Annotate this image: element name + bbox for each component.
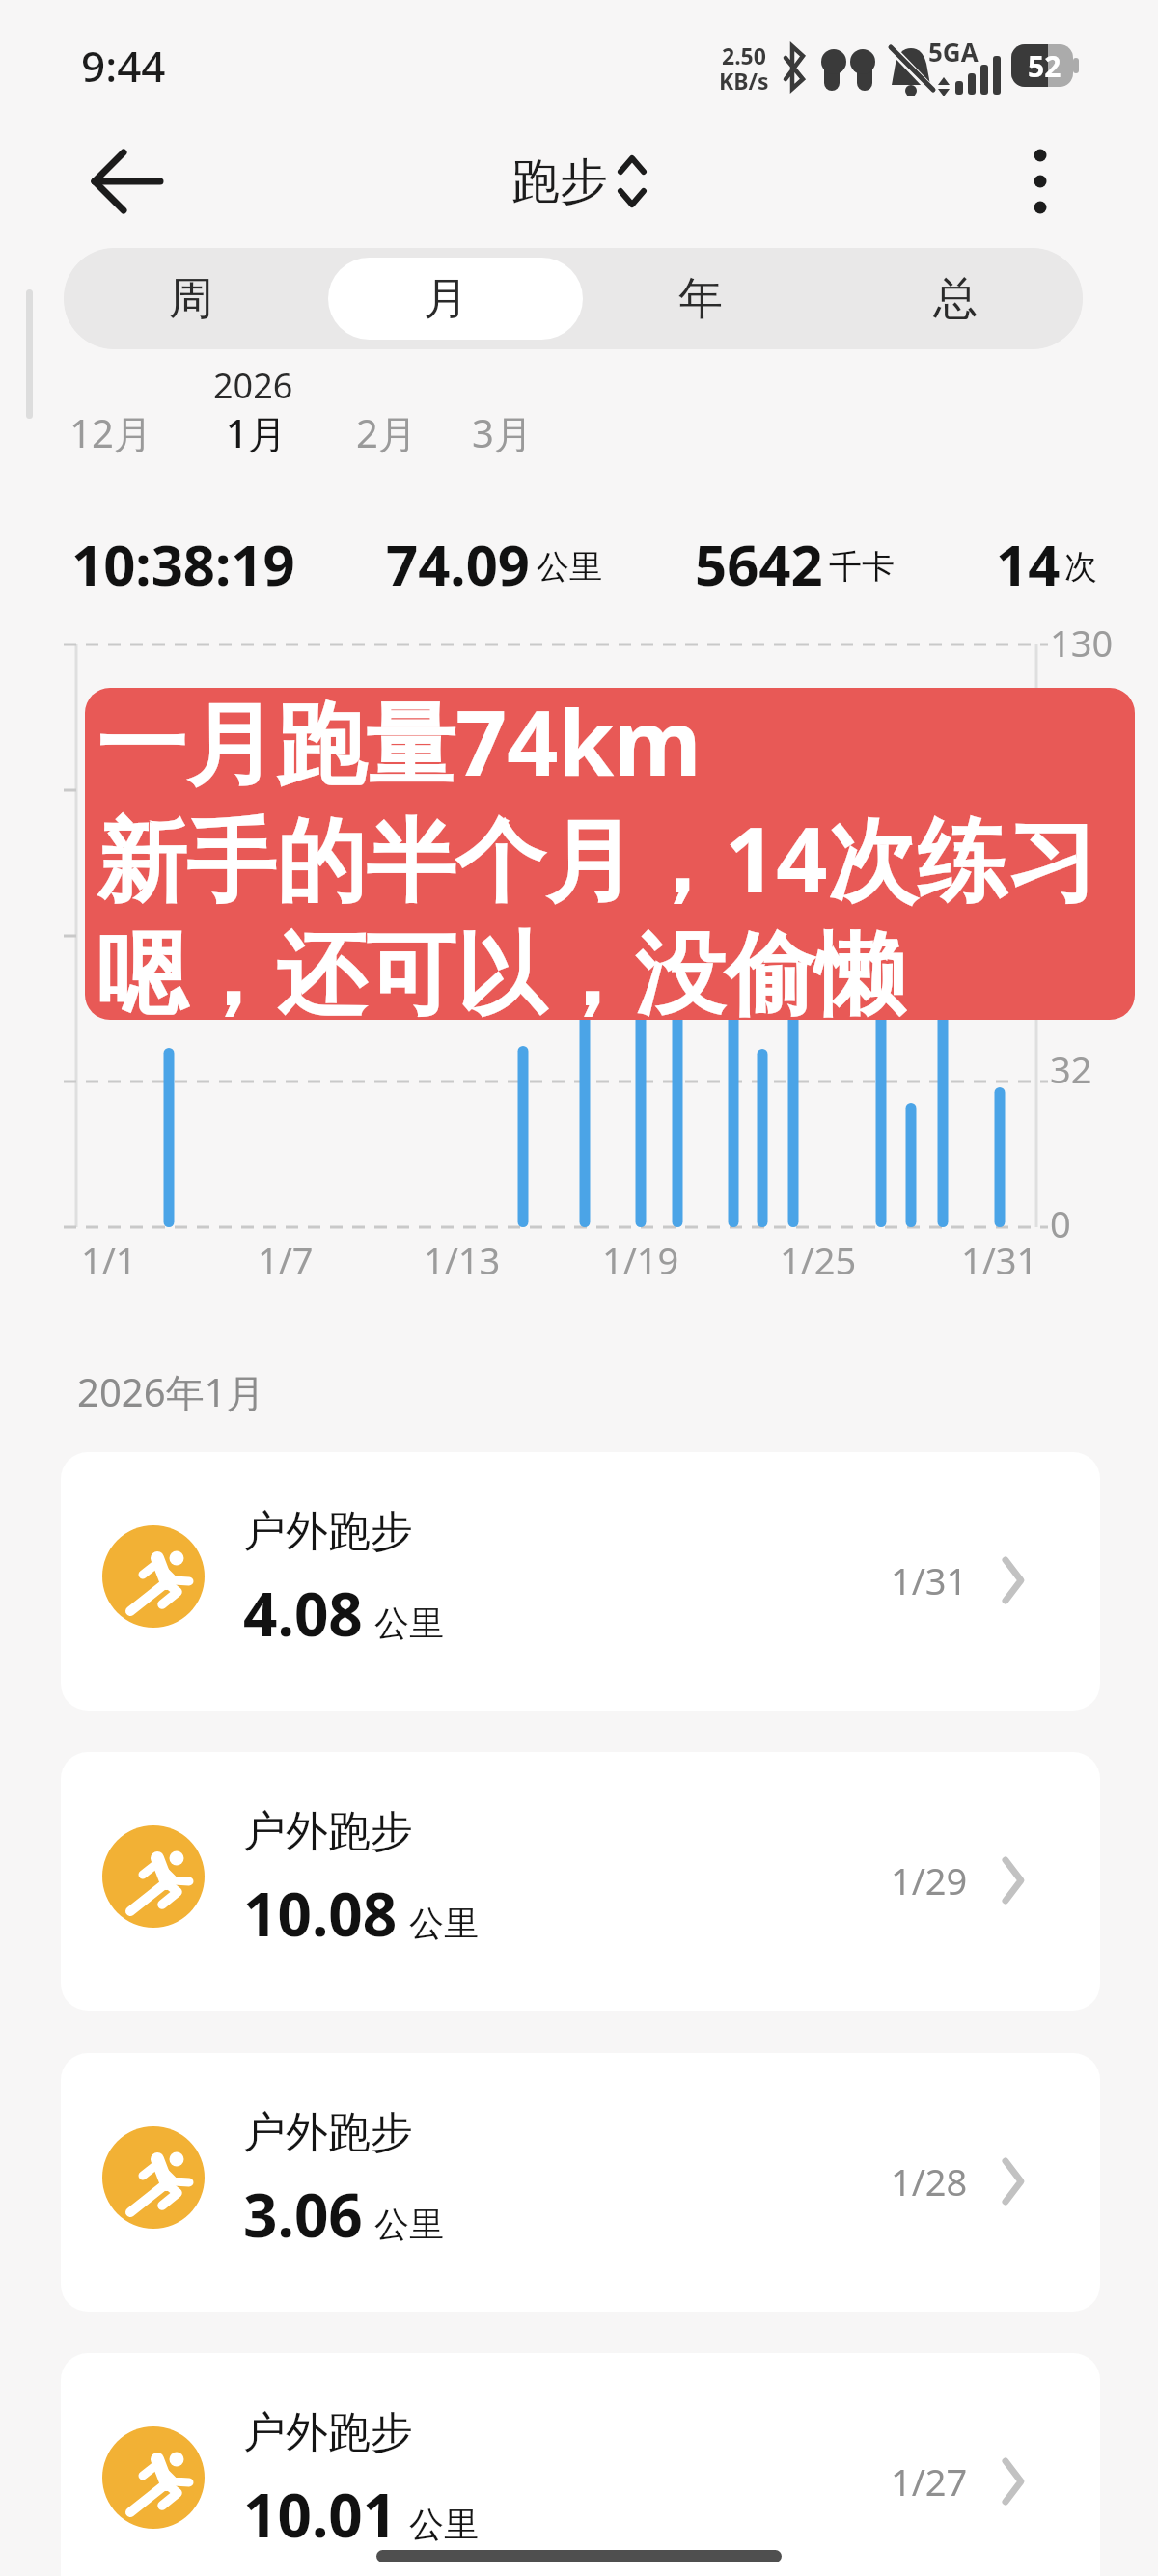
button[interactable]: 跑步: [482, 143, 675, 220]
staticText: 1月: [226, 406, 287, 459]
staticText: 10:38:19: [71, 526, 295, 595]
staticText: 次: [1064, 546, 1097, 588]
button[interactable]: 户外跑步: [61, 1752, 1100, 2011]
button[interactable]: 户外跑步: [61, 2353, 1100, 2576]
staticText: 户外跑步: [243, 2106, 413, 2159]
staticText: 9:44: [81, 37, 166, 91]
staticText: 52: [1028, 46, 1061, 85]
staticText: 年: [678, 271, 723, 327]
staticText: 32: [1050, 1044, 1092, 1090]
staticText: 公里: [374, 2203, 444, 2246]
staticText: 周: [169, 271, 213, 327]
staticText: 12月: [69, 406, 152, 459]
button[interactable]: 户外跑步: [61, 2053, 1100, 2312]
staticText: 千卡: [829, 546, 895, 588]
staticText: 2026年1月: [77, 1365, 265, 1415]
button[interactable]: [77, 140, 174, 223]
staticText: 0: [1050, 1198, 1071, 1245]
staticText: KB/s: [719, 66, 769, 91]
button[interactable]: 一月跑量74km: [85, 688, 1135, 1020]
staticText: 1/1: [81, 1235, 137, 1283]
staticText: 1/28: [891, 2156, 968, 2206]
staticText: 月: [424, 271, 468, 327]
button[interactable]: 总: [828, 248, 1083, 349]
button[interactable]: 户外跑步: [61, 1452, 1100, 1711]
staticText: 户外跑步: [243, 2406, 413, 2459]
button[interactable]: 2月: [333, 405, 439, 459]
button[interactable]: 月: [318, 248, 573, 349]
staticText: 1/27: [891, 2456, 968, 2507]
staticText: 3.06: [243, 2174, 363, 2255]
staticText: 1/29: [891, 1855, 968, 1905]
staticText: 1/13: [424, 1235, 501, 1283]
staticText: 1/19: [602, 1235, 679, 1283]
staticText: 10.08: [243, 1873, 398, 1954]
button[interactable]: 年: [573, 248, 828, 349]
staticText: 2月: [356, 406, 417, 459]
staticText: 14: [996, 526, 1061, 595]
button[interactable]: 1月: [203, 405, 309, 459]
staticText: 3月: [472, 406, 533, 459]
staticText: 新手的半个月，14次练习: [96, 797, 1097, 917]
staticText: 130: [1050, 617, 1114, 664]
staticText: 公里: [374, 1602, 444, 1645]
staticText: 户外跑步: [243, 1805, 413, 1858]
staticText: 1/7: [258, 1235, 314, 1283]
staticText: 2026: [213, 362, 293, 406]
staticText: 5642: [695, 526, 823, 595]
button[interactable]: 周: [64, 248, 318, 349]
staticText: 跑步: [511, 151, 608, 212]
staticText: 公里: [409, 1902, 479, 1945]
staticText: 总: [933, 271, 978, 327]
button[interactable]: 3月: [449, 405, 555, 459]
staticText: 公里: [537, 546, 602, 588]
staticText: 1/31: [961, 1235, 1038, 1283]
button[interactable]: 12月: [58, 405, 164, 459]
staticText: 公里: [409, 2503, 479, 2546]
staticText: 一月跑量74km: [96, 688, 702, 796]
staticText: 户外跑步: [243, 1505, 413, 1558]
staticText: 1/25: [780, 1235, 857, 1283]
staticText: 嗯，还可以，没偷懒: [96, 918, 904, 1020]
button[interactable]: [1004, 140, 1081, 223]
staticText: 4.08: [243, 1573, 363, 1654]
staticText: 74.09: [386, 526, 531, 595]
staticText: 2.50: [722, 41, 766, 66]
staticText: 5GA: [928, 35, 979, 64]
staticText: 1/31: [891, 1555, 968, 1605]
staticText: 10.01: [243, 2474, 398, 2555]
